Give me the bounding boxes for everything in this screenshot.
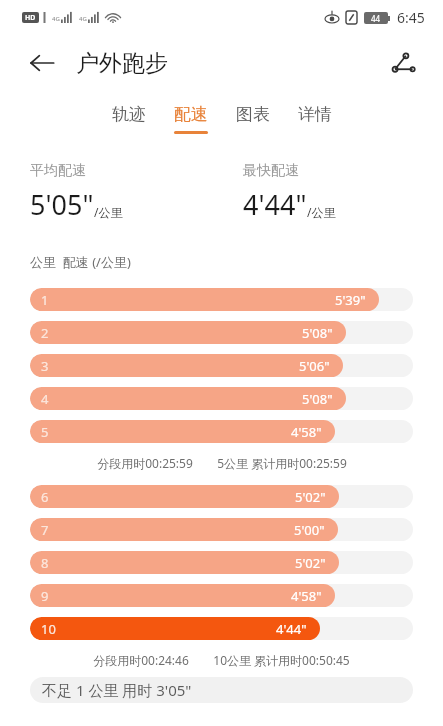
- staticText: 平均配速: [30, 162, 86, 180]
- staticText: /公里: [307, 204, 336, 220]
- staticText: 10: [41, 620, 56, 638]
- staticText: 9: [41, 587, 49, 605]
- button[interactable]: 6: [30, 485, 413, 508]
- staticText: 4'44": [243, 186, 307, 223]
- staticText: 4G: [79, 15, 87, 23]
- staticText: 最快配速: [243, 162, 299, 180]
- button[interactable]: 不足 1 公里 用时 3'05": [30, 677, 413, 703]
- button[interactable]: Share: [381, 41, 425, 85]
- button[interactable]: 轨迹: [98, 98, 160, 140]
- button[interactable]: 10: [30, 617, 413, 640]
- staticText: 2: [41, 324, 49, 342]
- staticText: 8: [41, 554, 49, 572]
- staticText: 分段用时00:25:59: [97, 455, 193, 471]
- button[interactable]: 8: [30, 551, 413, 574]
- staticText: 5'08": [302, 324, 333, 342]
- button[interactable]: 配速: [160, 98, 222, 140]
- staticText: 7: [41, 521, 49, 539]
- staticText: /公里: [94, 204, 123, 220]
- button[interactable]: 5: [30, 420, 413, 443]
- staticText: 4G: [52, 15, 60, 23]
- button[interactable]: 9: [30, 584, 413, 607]
- staticText: HD: [25, 13, 36, 23]
- staticText: 10公里 累计用时00:50:45: [213, 652, 350, 668]
- staticText: 户外跑步: [76, 49, 168, 78]
- staticText: 5'00": [294, 521, 325, 539]
- staticText: 5公里 累计用时00:25:59: [217, 455, 347, 471]
- button[interactable]: 3: [30, 354, 413, 377]
- staticText: 4'44": [276, 620, 307, 638]
- button[interactable]: 详情: [284, 98, 346, 140]
- staticText: 分段用时00:24:46: [93, 652, 189, 668]
- staticText: 不足 1 公里 用时 3'05": [42, 680, 192, 700]
- staticText: 4'58": [291, 423, 322, 441]
- staticText: 配速: [174, 104, 208, 125]
- staticText: 5'06": [299, 357, 330, 375]
- staticText: 5: [41, 423, 49, 441]
- button[interactable]: 图表: [222, 98, 284, 140]
- staticText: 公里 配速 (/公里): [30, 253, 131, 271]
- staticText: 图表: [236, 104, 270, 125]
- staticText: 6: [41, 488, 49, 506]
- staticText: 3: [41, 357, 49, 375]
- staticText: 详情: [298, 104, 332, 125]
- staticText: 4: [41, 390, 49, 408]
- button[interactable]: Back: [20, 41, 64, 85]
- staticText: 1: [41, 291, 49, 309]
- staticText: 5'08": [302, 390, 333, 408]
- staticText: 6:45: [397, 8, 425, 27]
- button[interactable]: 1: [30, 288, 413, 311]
- staticText: 5'05": [30, 186, 94, 223]
- staticText: 轨迹: [112, 104, 146, 125]
- staticText: 5'02": [295, 554, 326, 572]
- staticText: 5'02": [295, 488, 326, 506]
- button[interactable]: 2: [30, 321, 413, 344]
- staticText: 5'39": [335, 291, 366, 309]
- staticText: 44: [371, 13, 381, 24]
- staticText: 4'58": [291, 587, 322, 605]
- button[interactable]: 7: [30, 518, 413, 541]
- button[interactable]: 4: [30, 387, 413, 410]
